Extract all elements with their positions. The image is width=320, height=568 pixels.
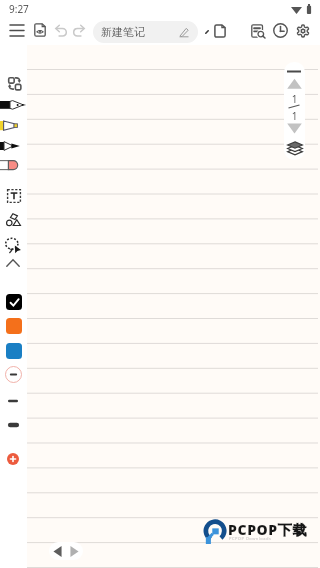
staticText: 新建笔记 bbox=[101, 25, 145, 39]
button[interactable]: Pen bbox=[0, 96, 27, 114]
staticText: 1 bbox=[284, 92, 305, 106]
button[interactable]: Transform bbox=[6, 75, 22, 91]
button[interactable]: Previous page bbox=[286, 76, 303, 90]
staticText: 1 bbox=[284, 109, 305, 123]
staticText: 9:27 bbox=[9, 2, 29, 16]
staticText: PCPOP下载 bbox=[228, 520, 307, 539]
button[interactable]: Preview bbox=[33, 20, 47, 40]
button[interactable]: Highlighter bbox=[0, 116, 27, 134]
button[interactable]: Undo bbox=[54, 21, 67, 39]
button[interactable]: Stroke thin bbox=[4, 365, 22, 383]
button[interactable]: Redo bbox=[72, 21, 85, 39]
button[interactable]: Text tool bbox=[5, 187, 22, 204]
button[interactable]: Layers bbox=[287, 141, 303, 156]
button[interactable]: Shapes bbox=[5, 211, 22, 228]
button[interactable]: Next bbox=[66, 542, 83, 560]
button[interactable]: Search bbox=[249, 21, 266, 40]
button[interactable]: Color swatch bbox=[4, 341, 23, 360]
button[interactable]: Color swatch bbox=[4, 316, 23, 335]
button[interactable]: New page bbox=[212, 21, 228, 40]
button[interactable]: Eraser bbox=[0, 156, 27, 174]
button[interactable]: Settings bbox=[294, 21, 311, 40]
button[interactable]: Menu bbox=[9, 20, 25, 40]
button[interactable]: Collapse bbox=[4, 257, 22, 269]
staticText: PCPOP Downloads bbox=[229, 536, 272, 541]
button[interactable]: Marker bbox=[0, 137, 27, 155]
button[interactable]: Add bbox=[7, 453, 19, 465]
button[interactable]: Stroke thick bbox=[4, 418, 22, 432]
button[interactable]: History bbox=[271, 21, 289, 40]
button[interactable]: Lasso select bbox=[4, 236, 22, 254]
button[interactable]: Next page bbox=[286, 121, 303, 135]
button[interactable]: 新建笔记 bbox=[93, 21, 198, 43]
button[interactable]: Stroke medium bbox=[4, 394, 22, 408]
button[interactable]: Color swatch bbox=[4, 292, 23, 311]
button[interactable]: Previous bbox=[49, 542, 66, 560]
